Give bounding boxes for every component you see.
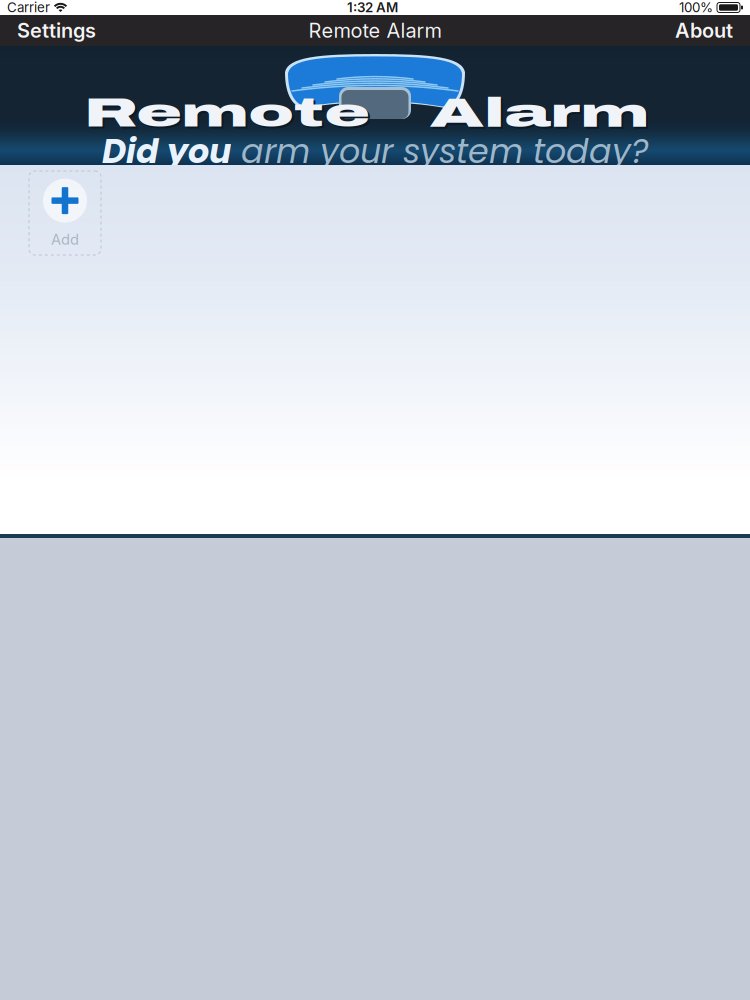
button[interactable]: About xyxy=(661,11,747,50)
staticText: 1:32 AM xyxy=(347,0,398,16)
staticText: Remote xyxy=(84,83,369,144)
staticText: arm your system today? xyxy=(231,128,648,175)
staticText: Settings xyxy=(17,18,96,43)
staticText: Remote xyxy=(86,85,371,146)
staticText: Alarm xyxy=(429,82,649,144)
staticText: Alarm xyxy=(431,84,651,146)
staticText: About xyxy=(675,18,733,43)
button[interactable]: Add alarm system xyxy=(29,171,101,255)
staticText: Add xyxy=(51,231,79,248)
staticText: Did you xyxy=(102,128,231,175)
button[interactable]: Settings xyxy=(3,11,110,50)
staticText: Carrier xyxy=(7,0,50,16)
staticText: 100% xyxy=(679,0,713,16)
staticText: Remote Alarm xyxy=(308,18,441,43)
